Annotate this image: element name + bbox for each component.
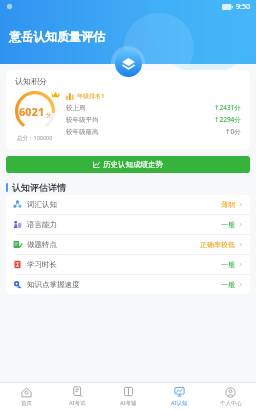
button[interactable]: AI考试 [52, 383, 103, 410]
button[interactable]: 做题特点 [6, 235, 250, 254]
staticText: 较年级最高 [66, 128, 99, 136]
staticText: AI考辅 [120, 399, 137, 407]
staticText: 年级排名1 [77, 92, 105, 100]
button[interactable]: AI考辅 [103, 383, 154, 410]
staticText: 做题特点 [27, 240, 57, 249]
button[interactable]: 知识点掌握速度 [6, 275, 250, 294]
staticText: AI认知 [171, 399, 188, 407]
staticText: 学习时长 [27, 260, 57, 269]
staticText: 一般 [221, 280, 235, 289]
staticText: 分 [46, 112, 52, 119]
staticText: 词汇认知 [27, 200, 57, 209]
button[interactable]: 词汇认知 [6, 195, 250, 214]
button[interactable]: 语言能力 [6, 215, 250, 234]
staticText: 首页 [21, 400, 32, 407]
staticText: 9:50 [236, 2, 250, 12]
button[interactable]: 个人中心 [205, 383, 256, 410]
staticText: AI考试 [69, 399, 86, 407]
staticText: 6021 [19, 104, 45, 119]
staticText: 一般 [221, 260, 235, 269]
button[interactable]: 认知积分 [6, 70, 250, 149]
staticText: 个人中心 [220, 400, 242, 407]
button[interactable]: 历史认知成绩走势 [6, 156, 250, 173]
button[interactable]: AI认知 [154, 383, 205, 410]
staticText: 语言能力 [27, 220, 57, 229]
staticText: ↑2294分 [214, 115, 241, 124]
staticText: ↑2431分 [214, 103, 241, 112]
staticText: 薄弱 [221, 200, 235, 209]
button[interactable]: 认知徽章 [111, 46, 145, 80]
staticText: 较上周 [66, 104, 86, 112]
staticText: 总分：100000 [17, 134, 53, 142]
staticText: 一般 [221, 220, 235, 229]
staticText: 历史认知成绩走势 [103, 160, 163, 169]
staticText: 认知积分 [15, 76, 47, 86]
button[interactable]: 学习时长 [6, 255, 250, 274]
staticText: 认知评估详情 [12, 182, 66, 193]
staticText: 意岳认知质量评估 [9, 29, 105, 44]
staticText: 较年级平均 [66, 116, 99, 124]
staticText: 知识点掌握速度 [27, 280, 80, 289]
staticText: ↑0分 [225, 127, 241, 136]
button[interactable]: 首页 [0, 383, 52, 410]
staticText: 正确率较低 [200, 240, 235, 249]
